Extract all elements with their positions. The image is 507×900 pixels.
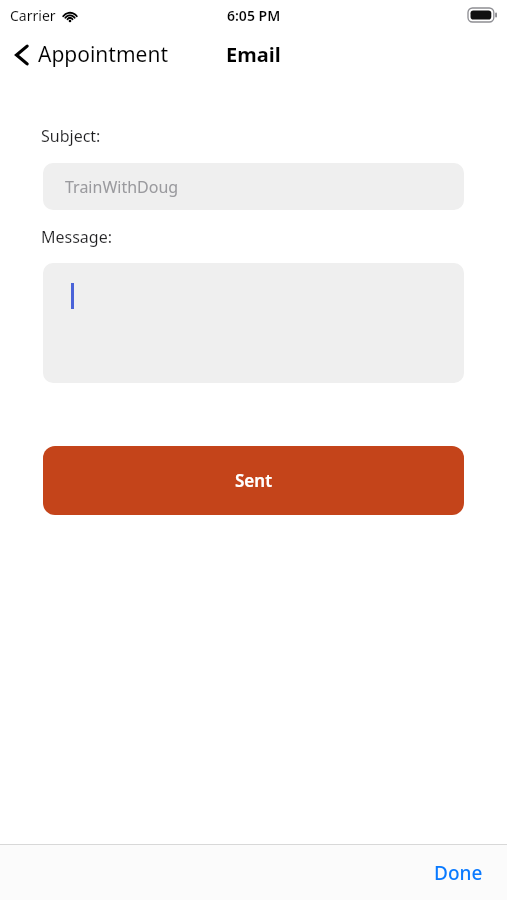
staticText: Email — [226, 41, 281, 68]
staticText: 6:05 PM — [227, 6, 281, 25]
other: Back — [14, 43, 30, 67]
staticText: Subject: — [41, 125, 101, 147]
staticText: Carrier — [10, 6, 56, 25]
button[interactable] — [43, 263, 464, 383]
staticText: Done — [434, 860, 483, 886]
staticText: Sent — [235, 469, 273, 492]
staticText: Message: — [41, 226, 112, 248]
staticText: TrainWithDoug — [65, 176, 179, 198]
button[interactable]: Back — [0, 36, 176, 73]
button[interactable]: TrainWithDoug — [43, 163, 464, 210]
button[interactable]: Sent — [43, 446, 464, 515]
staticText: Appointment — [38, 40, 168, 69]
button[interactable]: Done — [410, 850, 507, 896]
